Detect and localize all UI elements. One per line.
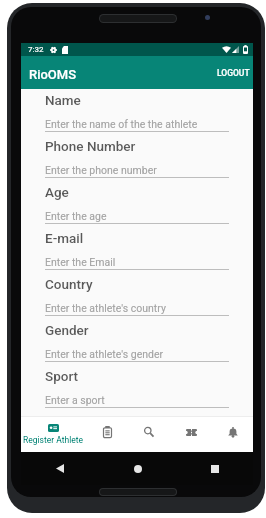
button[interactable]: Back — [21, 452, 99, 485]
button[interactable]: Home — [99, 452, 176, 485]
staticText: Enter the age — [45, 210, 107, 222]
staticText: LOGOUT — [217, 68, 250, 78]
button[interactable]: Notifications — [212, 416, 253, 452]
staticText: Gender — [45, 322, 89, 338]
staticText: Enter the phone number — [45, 164, 157, 176]
button[interactable]: Sport — [45, 368, 229, 414]
button[interactable]: Tickets — [170, 416, 212, 452]
staticText: Enter the Email — [45, 256, 116, 268]
button[interactable]: Register Athlete — [21, 416, 86, 452]
staticText: Sport — [45, 368, 79, 384]
staticText: Enter the athlete's country — [45, 302, 166, 314]
staticText: Age — [45, 184, 69, 200]
button[interactable]: Results — [86, 416, 128, 452]
button[interactable]: Age — [45, 184, 229, 230]
button[interactable]: LOGOUT — [211, 56, 253, 89]
staticText: Phone Number — [45, 138, 136, 154]
staticText: Register Athlete — [23, 435, 84, 445]
staticText: E-mail — [45, 230, 84, 246]
button[interactable]: Search — [128, 416, 170, 452]
button[interactable]: Recent apps — [176, 452, 253, 485]
staticText: Country — [45, 276, 93, 292]
staticText: Enter the name of the the athlete — [45, 118, 198, 130]
button[interactable]: Country — [45, 276, 229, 322]
staticText: 7:32 — [28, 45, 44, 54]
staticText: Name — [45, 92, 81, 108]
button[interactable]: Phone Number — [45, 138, 229, 184]
button[interactable]: Name — [45, 92, 229, 138]
button[interactable]: E-mail — [45, 230, 229, 276]
staticText: RioOMS — [29, 67, 77, 82]
staticText: Enter a sport — [45, 394, 105, 406]
button[interactable]: Gender — [45, 322, 229, 368]
staticText: Enter the athlete's gender — [45, 348, 164, 360]
